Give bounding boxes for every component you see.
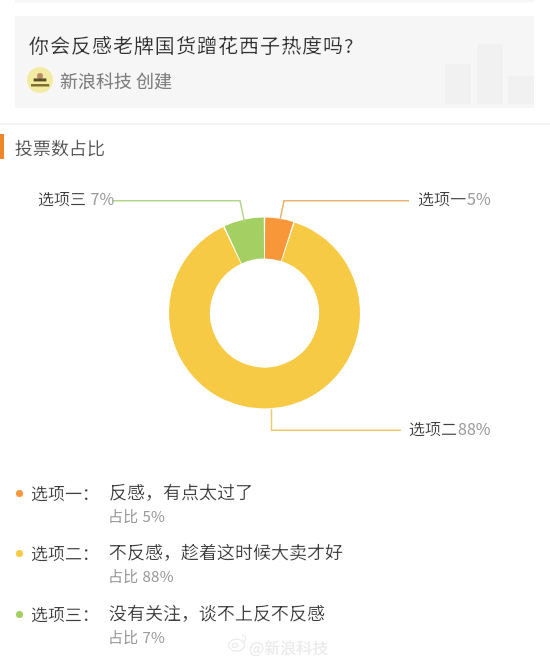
staticText: 选项二：: [31, 540, 99, 565]
button[interactable]: 选项二：: [0, 538, 550, 598]
staticText: 你会反感老牌国货蹭花西子热度吗?: [29, 30, 355, 59]
button[interactable]: 选项一：: [0, 478, 550, 538]
staticText: 选项二: [409, 416, 458, 439]
staticText: 不反感，趁着这时候大卖才好: [109, 538, 343, 564]
staticText: 选项一: [418, 186, 467, 209]
staticText: 占比 5%: [108, 505, 166, 527]
other: 微博水印: [228, 634, 248, 654]
other: 新浪科技 头像: [27, 67, 53, 93]
button[interactable]: 选项二: [409, 416, 491, 439]
button[interactable]: 选项三: [38, 186, 115, 209]
staticText: @新浪科技: [249, 635, 329, 658]
staticText: 7%: [87, 186, 115, 209]
staticText: 选项三: [38, 186, 87, 209]
staticText: 88%: [458, 416, 491, 439]
staticText: 新浪科技 创建: [60, 67, 173, 93]
staticText: 选项一：: [31, 480, 99, 505]
button[interactable]: 选项一: [418, 186, 491, 209]
staticText: 占比 88%: [108, 565, 174, 587]
staticText: 占比 7%: [108, 626, 166, 648]
staticText: 投票数占比: [15, 134, 105, 160]
staticText: 选项三：: [31, 601, 99, 626]
staticText: 没有关注，谈不上反不反感: [109, 599, 325, 625]
staticText: 5%: [467, 186, 491, 209]
button[interactable]: 选项三：: [0, 599, 550, 658]
staticText: 反感，有点太过了: [109, 478, 253, 504]
button[interactable]: 新浪科技 头像: [27, 67, 173, 93]
